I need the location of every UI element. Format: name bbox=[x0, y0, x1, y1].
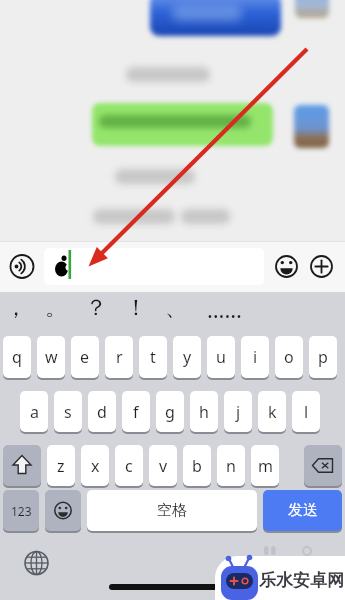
staticText: o bbox=[284, 346, 294, 368]
staticText: q bbox=[12, 346, 22, 368]
staticText: s bbox=[64, 401, 72, 423]
staticText: 乐水安卓网 bbox=[259, 570, 344, 591]
staticText: a bbox=[30, 401, 39, 423]
staticText: b bbox=[192, 455, 202, 477]
staticText: k bbox=[268, 401, 277, 423]
staticText: g bbox=[165, 401, 175, 423]
staticText: z bbox=[57, 455, 65, 477]
staticText: ？ bbox=[85, 294, 107, 322]
staticText: r bbox=[116, 346, 123, 368]
staticText: j bbox=[236, 401, 241, 423]
staticText: 。 bbox=[45, 294, 67, 322]
staticText: h bbox=[199, 401, 209, 423]
staticText: e bbox=[80, 346, 90, 368]
staticText: u bbox=[216, 346, 226, 368]
staticText: l bbox=[304, 401, 309, 423]
staticText: ！ bbox=[125, 294, 147, 322]
staticText: m bbox=[258, 455, 273, 477]
staticText: f bbox=[133, 401, 139, 423]
staticText: p bbox=[318, 346, 328, 368]
staticText: d bbox=[97, 401, 107, 423]
staticText: c bbox=[125, 455, 133, 477]
staticText: x bbox=[91, 455, 100, 477]
staticText: w bbox=[45, 346, 58, 368]
staticText: 空格 bbox=[157, 501, 187, 520]
staticText: t bbox=[150, 346, 156, 368]
staticText: i bbox=[253, 346, 258, 368]
staticText: n bbox=[226, 455, 236, 477]
staticText: v bbox=[159, 455, 168, 477]
staticText: 123 bbox=[11, 503, 32, 519]
staticText: 、 bbox=[165, 294, 187, 322]
staticText: ， bbox=[5, 294, 27, 322]
staticText: …… bbox=[207, 294, 242, 324]
staticText: 发送 bbox=[288, 501, 318, 520]
staticText: y bbox=[183, 346, 192, 368]
